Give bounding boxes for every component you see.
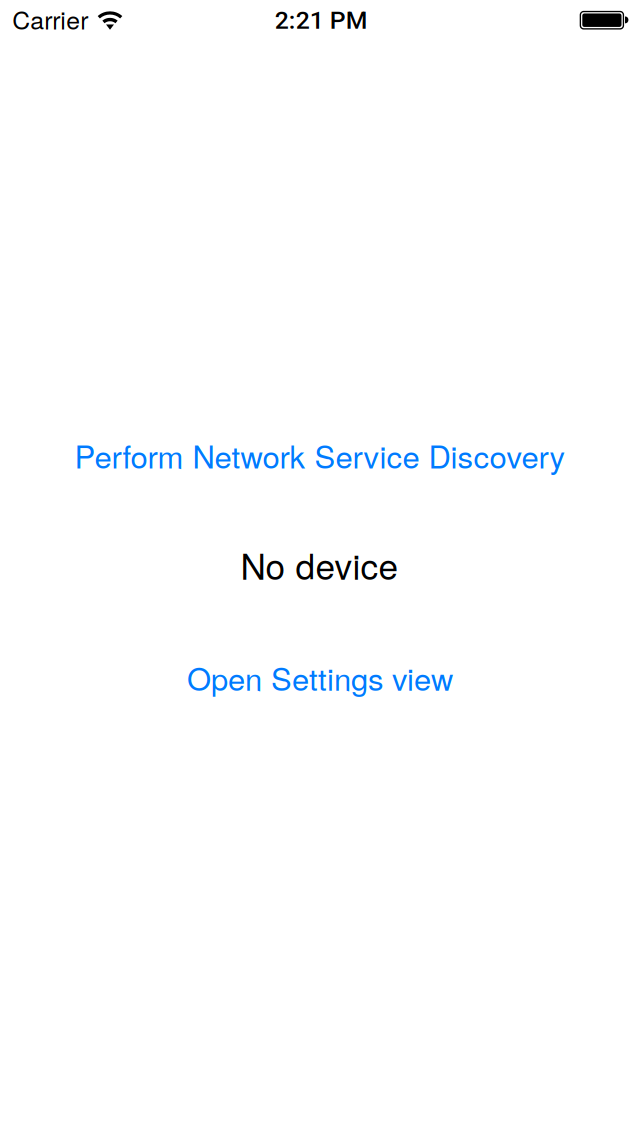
button[interactable]: Open Settings view	[187, 655, 453, 700]
staticText: Carrier	[12, 1, 88, 36]
staticText: 2:21 PM	[275, 6, 368, 35]
staticText: No device	[240, 539, 398, 590]
button[interactable]: Perform Network Service Discovery	[74, 433, 565, 477]
staticText: Perform Network Service Discovery	[74, 433, 565, 477]
staticText: Open Settings view	[187, 655, 453, 700]
